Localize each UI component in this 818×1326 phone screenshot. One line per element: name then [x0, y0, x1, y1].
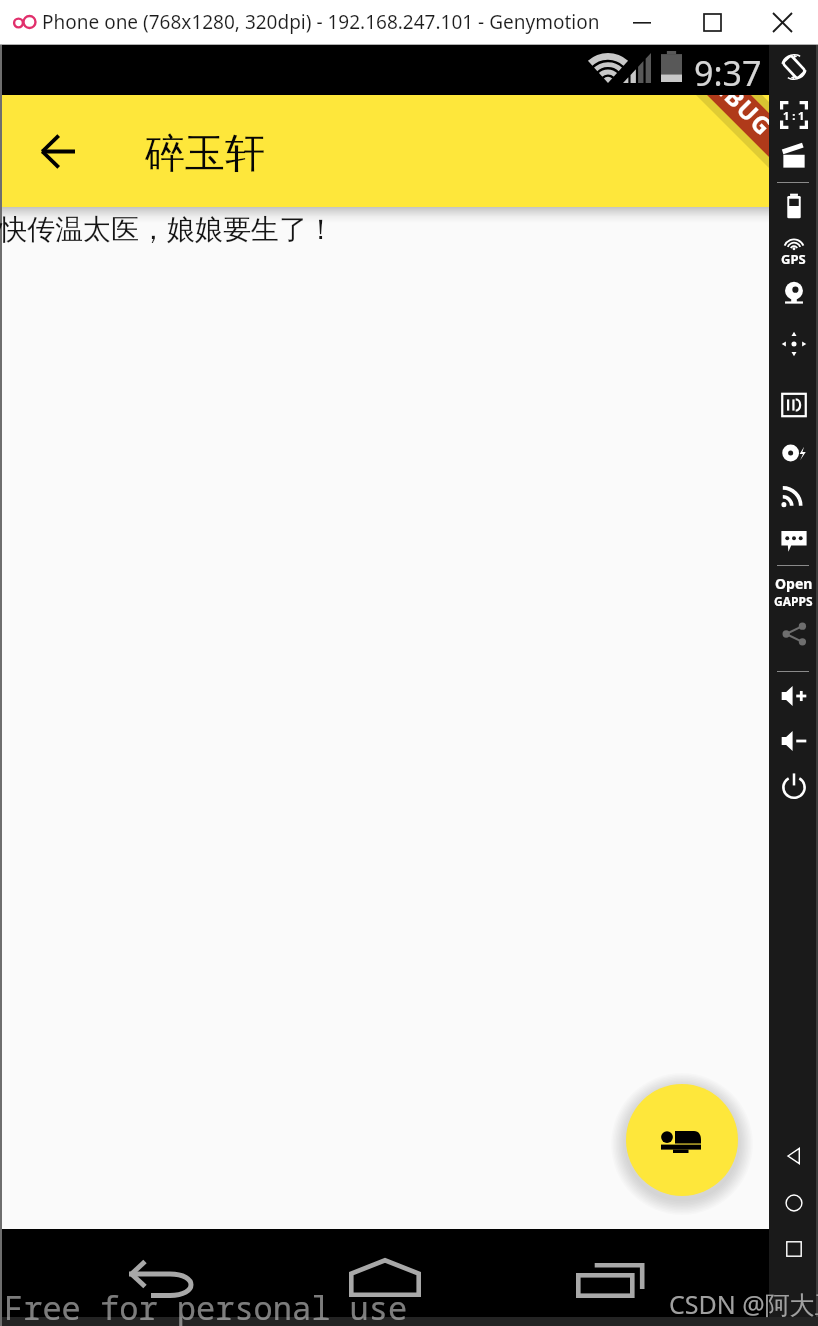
button[interactable]: Power [769, 764, 818, 808]
staticText: 快传温太医，娘娘要生了！ [0, 212, 335, 247]
button[interactable]: Navigation [769, 322, 818, 366]
button[interactable]: Volume up [769, 674, 818, 718]
button[interactable]: Open GAPPS [769, 574, 818, 606]
button[interactable]: Identifiers [769, 383, 818, 427]
button[interactable]: Home [327, 1239, 447, 1311]
staticText: GAPPS [774, 593, 813, 606]
button[interactable]: Screen recorder [769, 135, 818, 179]
button[interactable]: Disk I/O [769, 431, 818, 475]
staticText: DEBUG [694, 95, 769, 143]
staticText: CSDN @阿大豆 [669, 1287, 818, 1321]
button[interactable]: Volume down [769, 719, 818, 763]
staticText: GPS [781, 250, 806, 268]
button[interactable]: GPS [769, 230, 818, 274]
button[interactable]: Battery [769, 184, 818, 228]
button[interactable]: Recent apps [769, 1227, 818, 1271]
button[interactable]: Back [769, 1134, 818, 1178]
button[interactable]: Back [2, 95, 114, 207]
button[interactable]: Share [769, 612, 818, 656]
button[interactable]: Maximize [682, 0, 742, 45]
button[interactable]: Camera [769, 271, 818, 315]
button[interactable]: Recent apps [552, 1239, 672, 1311]
staticText: Free for personal use [4, 1286, 408, 1326]
button[interactable]: Messages [769, 518, 818, 562]
button[interactable]: Minimize [612, 0, 672, 45]
staticText: Open [775, 574, 813, 593]
button[interactable]: Back [102, 1239, 222, 1311]
staticText: 1 : 1 [783, 108, 805, 123]
staticText: 9:37 [694, 50, 762, 96]
button[interactable]: Actual size 1:1 [769, 93, 818, 137]
staticText: Phone one (768x1280, 320dpi) - 192.168.2… [42, 9, 600, 35]
button[interactable]: Home [769, 1181, 818, 1225]
button[interactable]: Network [769, 472, 818, 516]
staticText: 碎玉轩 [145, 128, 265, 178]
button[interactable]: Rotate screen [769, 45, 818, 89]
button[interactable]: Close [752, 0, 812, 45]
button[interactable]: Sleep mode [626, 1084, 738, 1196]
